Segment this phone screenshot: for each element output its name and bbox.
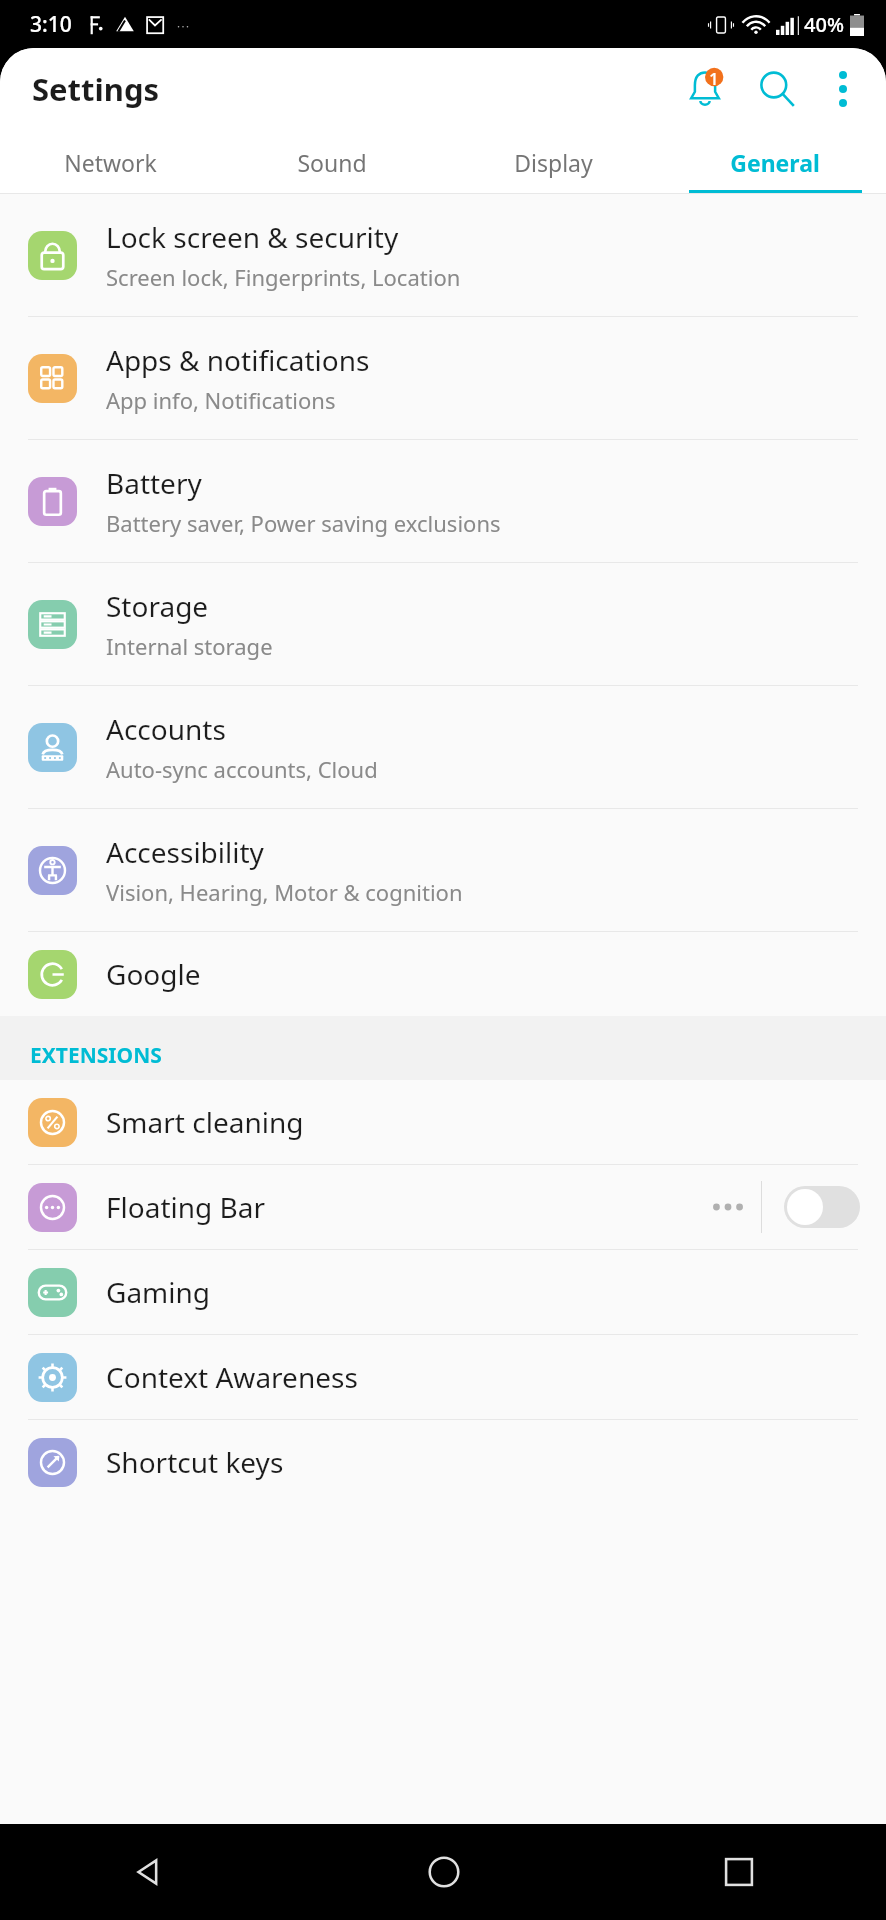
staticText: Gaming — [106, 1273, 211, 1311]
button[interactable]: Apps & notifications — [0, 317, 886, 439]
staticText: General — [730, 147, 820, 178]
button[interactable]: Floating Bar — [0, 1165, 886, 1249]
button[interactable]: Accounts — [0, 686, 886, 808]
button[interactable]: Lock screen & security — [0, 194, 886, 316]
button[interactable]: Search — [748, 60, 806, 118]
staticText: Apps & notifications — [106, 341, 370, 379]
button[interactable]: Sound — [221, 130, 442, 194]
staticText: Smart cleaning — [106, 1103, 304, 1141]
button[interactable]: Battery — [0, 440, 886, 562]
staticText: Shortcut keys — [106, 1443, 284, 1481]
button[interactable]: More options — [814, 60, 872, 118]
button[interactable]: Shortcut keys — [0, 1420, 886, 1504]
staticText: Screen lock, Fingerprints, Location — [106, 262, 461, 292]
staticText: 40% — [804, 11, 844, 38]
button[interactable]: Recent apps — [591, 1824, 886, 1920]
staticText: Auto-sync accounts, Cloud — [106, 754, 378, 784]
staticText: 3:10 — [30, 10, 72, 39]
staticText: Storage — [106, 587, 209, 625]
button[interactable]: Storage — [0, 563, 886, 685]
button[interactable]: Gaming — [0, 1250, 886, 1334]
button[interactable]: Notifications — [676, 60, 734, 118]
staticText: Battery saver, Power saving exclusions — [106, 508, 501, 538]
button[interactable]: Network — [0, 130, 221, 194]
staticText: EXTENSIONS — [30, 1041, 162, 1070]
staticText: Display — [514, 147, 593, 178]
staticText: Settings — [32, 68, 160, 110]
button[interactable]: Display — [442, 130, 664, 194]
staticText: Accounts — [106, 710, 226, 748]
staticText: Lock screen & security — [106, 218, 399, 256]
button[interactable]: Context Awareness — [0, 1335, 886, 1419]
button[interactable]: Floating Bar toggle — [784, 1186, 860, 1228]
button[interactable]: Smart cleaning — [0, 1080, 886, 1164]
staticText: Google — [106, 955, 201, 993]
staticText: Battery — [106, 464, 202, 502]
staticText: Network — [64, 147, 157, 178]
button[interactable]: Back — [0, 1824, 296, 1920]
staticText: Context Awareness — [106, 1358, 358, 1396]
staticText: 1 — [709, 67, 719, 90]
button[interactable]: Google — [0, 932, 886, 1016]
staticText: Accessibility — [106, 833, 264, 871]
button[interactable]: Home — [296, 1824, 591, 1920]
staticText: Floating Bar — [106, 1188, 266, 1226]
button[interactable]: Accessibility — [0, 809, 886, 931]
staticText: Sound — [297, 147, 367, 178]
staticText: Vision, Hearing, Motor & cognition — [106, 877, 463, 907]
staticText: App info, Notifications — [106, 385, 336, 415]
staticText: Internal storage — [106, 631, 273, 661]
button[interactable]: General — [664, 130, 886, 194]
